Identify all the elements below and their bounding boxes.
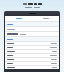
button[interactable] [5,58,59,62]
button[interactable] [5,46,59,50]
button[interactable] [5,27,59,32]
button[interactable] [5,54,59,58]
button[interactable] [5,62,59,66]
button[interactable] [5,32,59,37]
button[interactable] [32,16,59,21]
button[interactable] [5,42,59,46]
button[interactable] [5,16,32,21]
button[interactable] [5,66,59,69]
button[interactable] [5,50,59,54]
